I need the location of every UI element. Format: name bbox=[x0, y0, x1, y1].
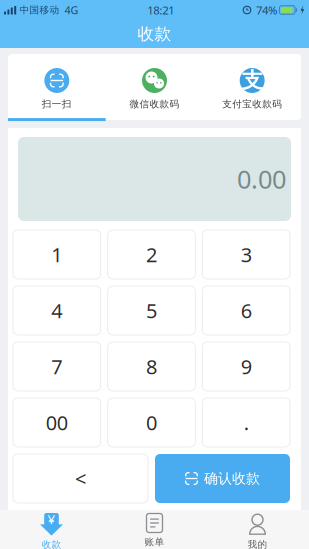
button[interactable]: 账单 bbox=[103, 510, 206, 549]
staticText: 6 bbox=[241, 297, 252, 324]
staticText: 74% bbox=[256, 2, 277, 18]
staticText: 收款 bbox=[137, 23, 171, 44]
staticText: 18:21 bbox=[147, 2, 174, 18]
staticText: 7 bbox=[51, 353, 62, 380]
button[interactable]: < bbox=[13, 454, 148, 503]
button[interactable]: . bbox=[202, 398, 290, 447]
staticText: 00 bbox=[46, 409, 68, 436]
button[interactable]: ¥ bbox=[0, 510, 103, 549]
button[interactable]: 3 bbox=[202, 230, 290, 279]
staticText: 账单 bbox=[144, 536, 164, 548]
staticText: 8 bbox=[146, 353, 157, 380]
button[interactable]: 5 bbox=[108, 286, 195, 335]
button[interactable]: 我的 bbox=[206, 510, 309, 549]
staticText: 中国移动 bbox=[19, 4, 59, 16]
staticText: 支付宝收款码 bbox=[222, 98, 282, 110]
staticText: 支 bbox=[242, 67, 263, 94]
staticText: 0.00 bbox=[237, 162, 286, 196]
button[interactable]: 6 bbox=[202, 286, 290, 335]
button[interactable]: 扫一扫 bbox=[8, 54, 106, 120]
button[interactable]: 1 bbox=[13, 230, 101, 279]
staticText: < bbox=[75, 465, 86, 492]
staticText: 确认收款 bbox=[204, 470, 260, 487]
staticText: 扫一扫 bbox=[42, 98, 72, 110]
staticText: 4G bbox=[64, 3, 78, 17]
staticText: ¥ bbox=[47, 510, 55, 528]
button[interactable]: 00 bbox=[13, 398, 101, 447]
staticText: 3 bbox=[241, 241, 252, 268]
button[interactable]: 支 bbox=[203, 54, 301, 120]
button[interactable]: 9 bbox=[202, 342, 290, 391]
staticText: 2 bbox=[146, 241, 157, 268]
button[interactable]: 4 bbox=[13, 286, 101, 335]
button[interactable]: 0 bbox=[108, 398, 195, 447]
button[interactable]: 8 bbox=[108, 342, 195, 391]
staticText: 4 bbox=[51, 297, 62, 324]
button[interactable]: 微信收款码 bbox=[106, 54, 203, 120]
staticText: 0 bbox=[146, 409, 157, 436]
staticText: 收款 bbox=[41, 539, 61, 549]
staticText: 1 bbox=[51, 241, 62, 268]
staticText: 我的 bbox=[247, 539, 267, 549]
staticText: . bbox=[244, 409, 249, 436]
staticText: 微信收款码 bbox=[129, 98, 179, 110]
button[interactable]: 确认收款 bbox=[155, 454, 290, 503]
button[interactable]: 2 bbox=[108, 230, 195, 279]
staticText: 9 bbox=[241, 353, 252, 380]
staticText: 5 bbox=[146, 297, 157, 324]
button[interactable]: 7 bbox=[13, 342, 101, 391]
